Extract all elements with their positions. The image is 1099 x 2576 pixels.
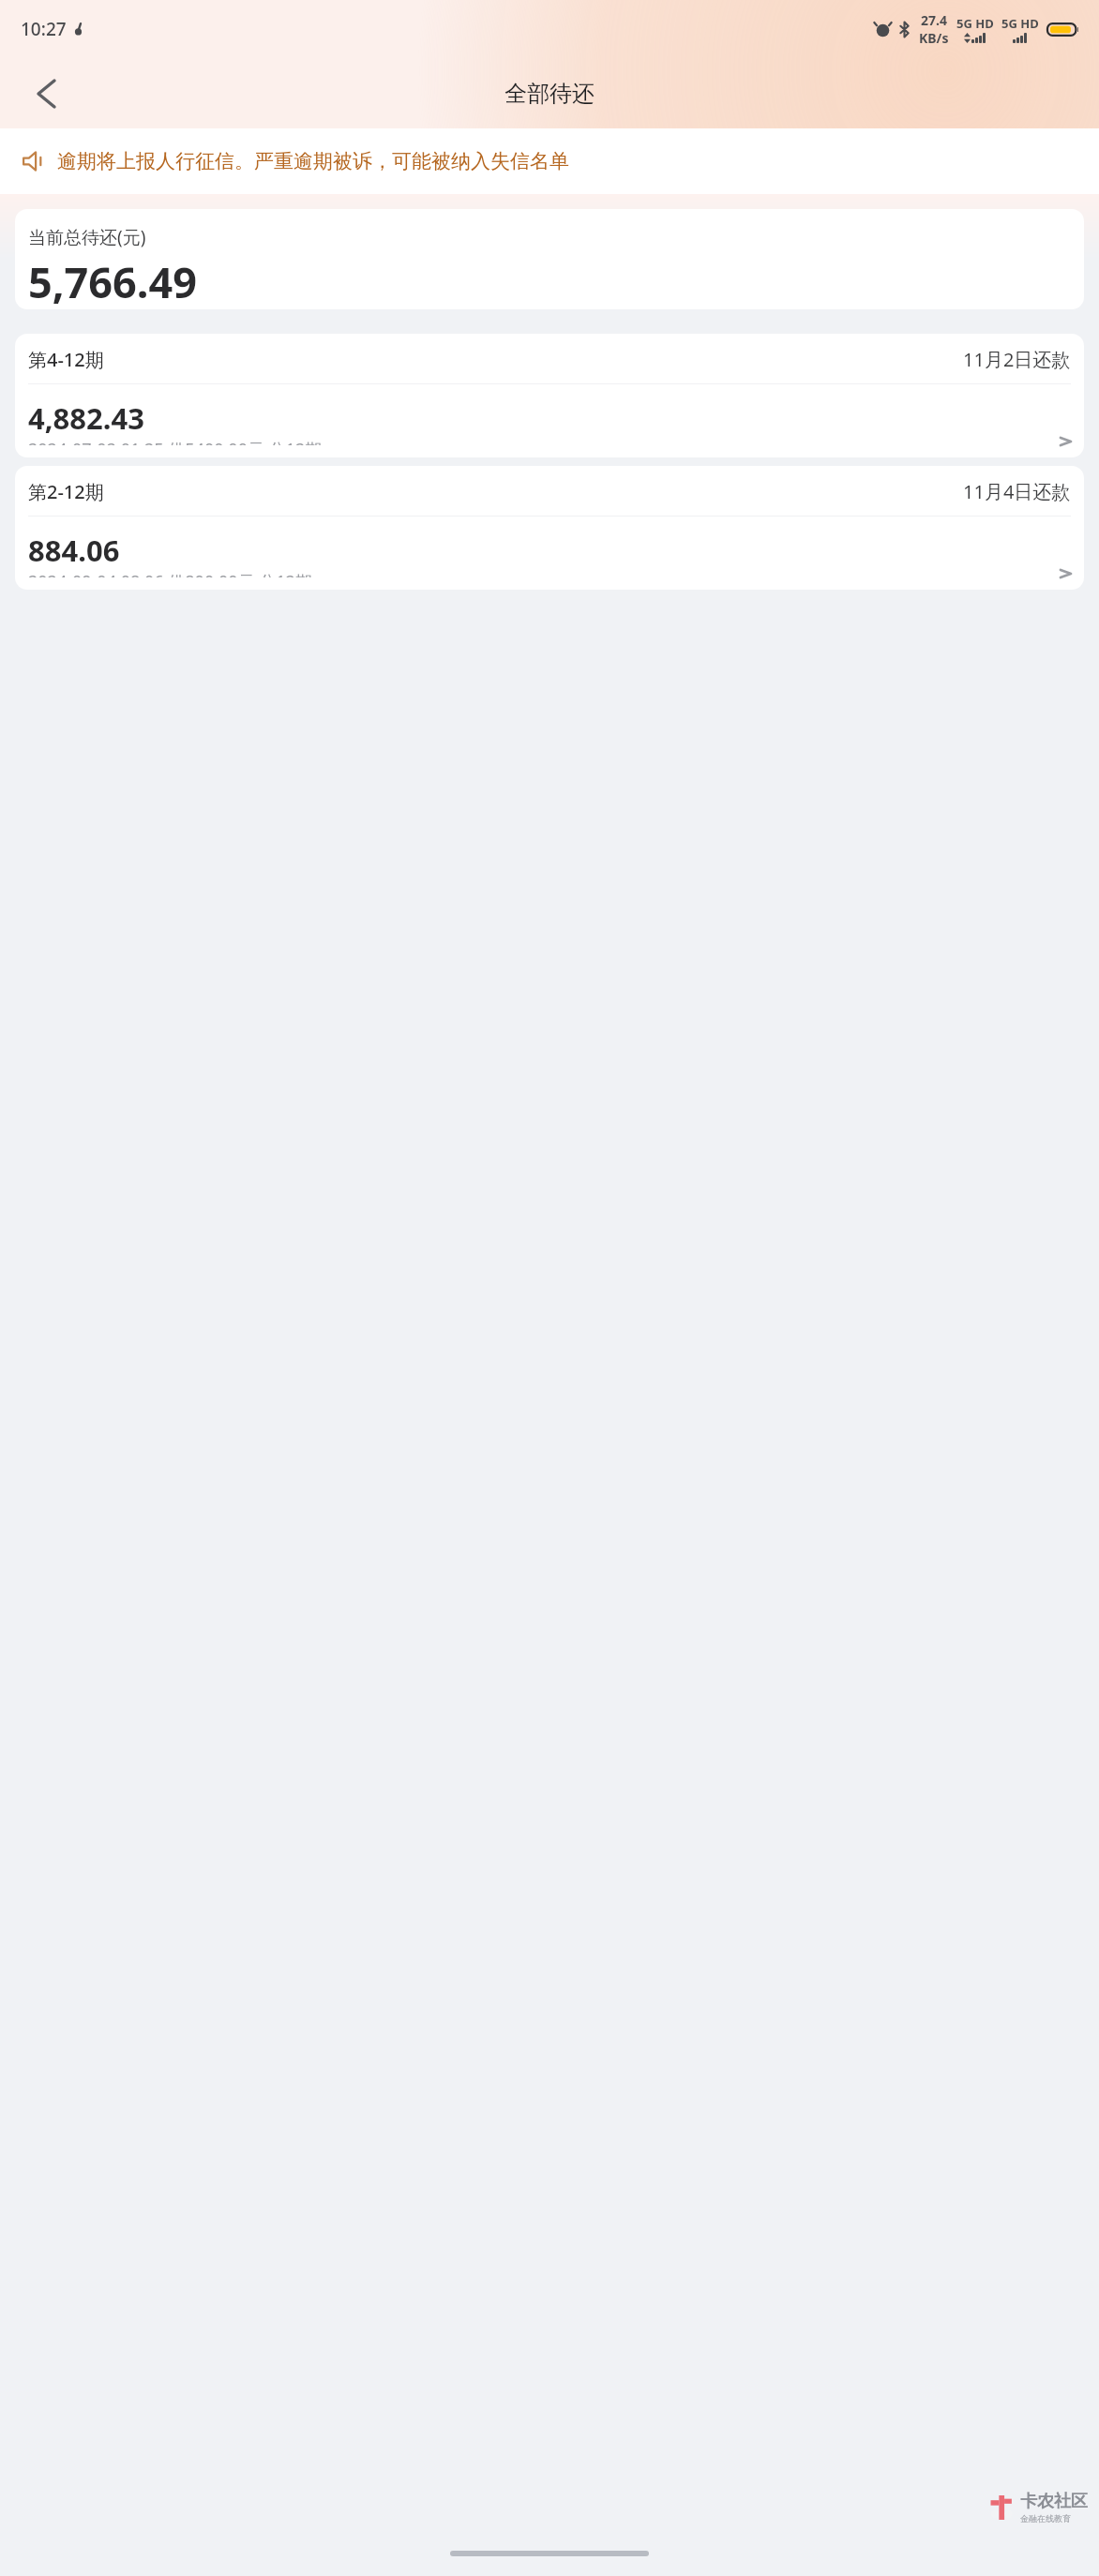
staticText: 4,882.43 [28, 398, 144, 438]
staticText: 11月4日还款 [963, 479, 1071, 504]
staticText: 2024-09-04 08:06 借800.00元 分12期 [28, 570, 312, 577]
staticText: 5G HD [1001, 15, 1039, 32]
staticText: 884.06 [28, 531, 120, 570]
button[interactable]: 当前总待还(元) [15, 209, 1084, 309]
button[interactable]: 逾期将上报人行征信。严重逾期被诉，可能被纳入失信名单 [0, 128, 1099, 194]
staticText: 5,766.49 [28, 253, 197, 309]
button[interactable]: 第4-12期 [15, 334, 1084, 457]
staticText: 第2-12期 [28, 479, 104, 504]
staticText: 当前总待还(元) [28, 225, 146, 249]
staticText: KB/s [919, 29, 949, 47]
staticText: 2024-07-02 01:25 借5400.00元 分12期 [28, 438, 323, 445]
staticText: 金融在线教育 [1020, 2513, 1071, 2524]
button[interactable]: Back [23, 70, 69, 117]
staticText: 5G HD [956, 15, 994, 32]
staticText: 全部待还 [504, 80, 595, 108]
staticText: 10:27 [21, 17, 67, 41]
staticText: 卡农社区 [1020, 2491, 1088, 2512]
staticText: 逾期将上报人行征信。严重逾期被诉，可能被纳入失信名单 [57, 149, 569, 173]
staticText: 27.4 [921, 11, 947, 29]
staticText: 11月2日还款 [963, 347, 1071, 372]
staticText: 第4-12期 [28, 347, 104, 372]
button[interactable]: 第2-12期 [15, 466, 1084, 590]
